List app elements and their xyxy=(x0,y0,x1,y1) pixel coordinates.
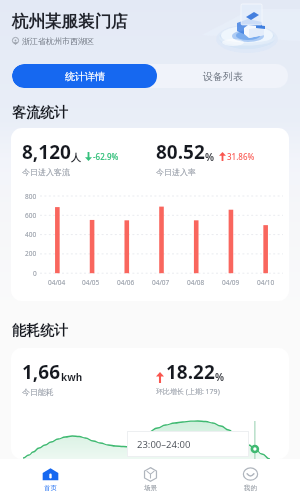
button[interactable]: 统计详情 xyxy=(12,64,157,88)
staticText: 800 xyxy=(25,192,37,201)
staticText: 04/07 xyxy=(152,278,170,287)
staticText: 今日进入率 xyxy=(156,167,196,177)
staticText: 浙江省杭州市西湖区 xyxy=(22,36,94,46)
staticText: 23:00–24:00 xyxy=(137,438,191,451)
staticText: 首页 xyxy=(44,484,57,492)
staticText: 杭州某服装门店 xyxy=(12,11,128,32)
staticText: % xyxy=(215,370,225,384)
staticText: 场景 xyxy=(144,484,157,492)
staticText: 能耗统计 xyxy=(12,322,68,340)
staticText: 客流统计 xyxy=(12,104,68,122)
staticText: 8,120 xyxy=(22,139,71,165)
staticText: 200 xyxy=(25,249,37,258)
staticText: 400 xyxy=(25,230,37,239)
staticText: 0 xyxy=(33,269,37,278)
button[interactable]: 场景 xyxy=(100,459,200,500)
staticText: 人 xyxy=(71,151,81,164)
staticText: 31.86% xyxy=(227,151,255,162)
staticText: 今日进入客流 xyxy=(22,167,70,177)
staticText: 环比增长 (上期: 179) xyxy=(156,387,220,397)
staticText: 04/05 xyxy=(82,278,100,287)
staticText: 04/08 xyxy=(187,278,205,287)
button[interactable]: 设备列表 xyxy=(157,64,288,88)
staticText: 04/10 xyxy=(257,278,275,287)
staticText: 我的 xyxy=(244,484,257,492)
button[interactable]: 我的 xyxy=(200,459,300,500)
button[interactable]: 首页 xyxy=(0,459,100,500)
staticText: 04/04 xyxy=(48,278,66,287)
staticText: 80.52 xyxy=(156,139,205,165)
staticText: 今日能耗 xyxy=(22,387,54,397)
staticText: 04/06 xyxy=(117,278,135,287)
staticText: 04/09 xyxy=(222,278,240,287)
staticText: 1,66 xyxy=(22,359,61,385)
staticText: kwh xyxy=(61,370,83,384)
staticText: -62.9% xyxy=(93,151,119,162)
staticText: 统计详情 xyxy=(65,70,105,83)
staticText: % xyxy=(205,150,215,164)
staticText: 18.22 xyxy=(166,359,215,385)
staticText: 设备列表 xyxy=(203,70,243,83)
staticText: 600 xyxy=(25,211,37,220)
